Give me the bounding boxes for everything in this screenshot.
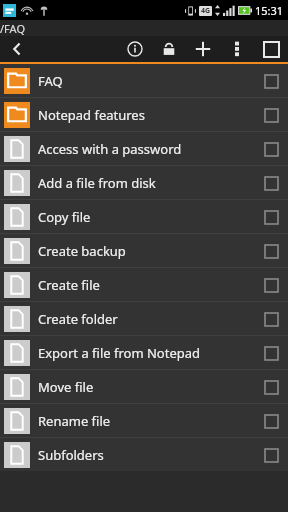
button[interactable]: Rename file (0, 404, 288, 437)
button[interactable]: Select FAQ (256, 66, 286, 96)
button[interactable]: Add a file from disk (0, 166, 288, 199)
button[interactable]: Select Copy file (256, 202, 286, 232)
staticText: Access with a password (38, 140, 256, 158)
button[interactable]: Subfolders (0, 438, 288, 471)
staticText: 15:31 (255, 3, 284, 18)
button[interactable]: Select Rename file (256, 406, 286, 436)
staticText: Move file (38, 378, 256, 396)
button[interactable]: Move file (0, 370, 288, 403)
staticText: Subfolders (38, 446, 256, 464)
staticText: Export a file from Notepad (38, 344, 256, 362)
button[interactable]: Add (186, 36, 220, 62)
button[interactable]: Select Create backup (256, 236, 286, 266)
button[interactable]: Notepad features (0, 98, 288, 131)
button[interactable]: Select Export a file from Notepad (256, 338, 286, 368)
button[interactable]: Select Access with a password (256, 134, 286, 164)
button[interactable]: Copy file (0, 200, 288, 233)
button[interactable]: FAQ (0, 64, 288, 97)
button[interactable]: Select all (254, 36, 288, 62)
button[interactable]: Lock (152, 36, 186, 62)
button[interactable]: Select Move file (256, 372, 286, 402)
button[interactable]: Access with a password (0, 132, 288, 165)
button[interactable]: Info (118, 36, 152, 62)
staticText: Notepad features (38, 106, 256, 124)
button[interactable]: Select Add a file from disk (256, 168, 286, 198)
staticText: /FAQ (0, 21, 25, 36)
button[interactable]: Select Notepad features (256, 100, 286, 130)
staticText: FAQ (38, 72, 256, 90)
button[interactable]: Export a file from Notepad (0, 336, 288, 369)
staticText: Create folder (38, 310, 256, 328)
staticText: Add a file from disk (38, 174, 256, 192)
button[interactable]: Create backup (0, 234, 288, 267)
button[interactable]: Create file (0, 268, 288, 301)
staticText: Rename file (38, 412, 256, 430)
button[interactable]: Select Subfolders (256, 440, 286, 470)
staticText: Create backup (38, 242, 256, 260)
button[interactable]: Select Create file (256, 270, 286, 300)
button[interactable]: Back (0, 36, 34, 62)
button[interactable]: More options (220, 36, 254, 62)
staticText: Copy file (38, 208, 256, 226)
staticText: 4G (201, 6, 211, 16)
button[interactable]: Create folder (0, 302, 288, 335)
button[interactable]: Select Create folder (256, 304, 286, 334)
staticText: Create file (38, 276, 256, 294)
